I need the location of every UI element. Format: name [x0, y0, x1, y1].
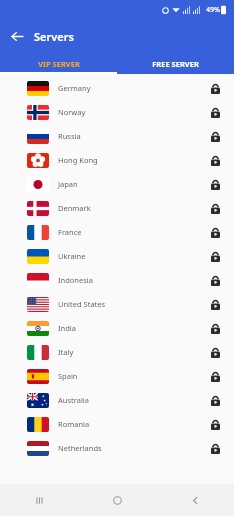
- staticText: Australia: [58, 395, 89, 405]
- button[interactable]: Locked Indonesia: [204, 269, 226, 291]
- button[interactable]: Locked Spain: [204, 365, 226, 387]
- staticText: Servers: [34, 29, 74, 44]
- staticText: France: [58, 227, 82, 237]
- button[interactable]: Germany: [0, 76, 234, 100]
- button[interactable]: VIP SERVER: [0, 53, 117, 74]
- button[interactable]: India: [0, 316, 234, 340]
- button[interactable]: France: [0, 220, 234, 244]
- button[interactable]: Locked Norway: [204, 101, 226, 123]
- staticText: VIP SERVER: [38, 59, 80, 69]
- button[interactable]: Locked United States: [204, 293, 226, 315]
- staticText: FREE SERVER: [152, 59, 199, 69]
- button[interactable]: Locked Italy: [204, 341, 226, 363]
- button[interactable]: Back: [0, 20, 34, 53]
- staticText: Japan: [58, 179, 78, 189]
- button[interactable]: FREE SERVER: [117, 53, 234, 74]
- staticText: Russia: [58, 131, 81, 141]
- staticText: Italy: [58, 347, 74, 357]
- staticText: Hong Kong: [58, 155, 98, 165]
- button[interactable]: Japan: [0, 172, 234, 196]
- staticText: Romania: [58, 419, 90, 429]
- button[interactable]: Locked Germany: [204, 77, 226, 99]
- button[interactable]: Denmark: [0, 196, 234, 220]
- button[interactable]: Australia: [0, 388, 234, 412]
- button[interactable]: Indonesia: [0, 268, 234, 292]
- staticText: Spain: [58, 371, 78, 381]
- staticText: Indonesia: [58, 275, 93, 285]
- button[interactable]: United States: [0, 292, 234, 316]
- staticText: India: [58, 323, 76, 333]
- staticText: Ukraine: [58, 251, 86, 261]
- button[interactable]: Romania: [0, 412, 234, 436]
- button[interactable]: Locked Romania: [204, 413, 226, 435]
- staticText: United States: [58, 299, 106, 309]
- button[interactable]: Home: [78, 484, 156, 516]
- staticText: Norway: [58, 107, 86, 117]
- staticText: Denmark: [58, 203, 91, 213]
- button[interactable]: Locked Australia: [204, 389, 226, 411]
- button[interactable]: Spain: [0, 364, 234, 388]
- button[interactable]: Recent apps: [0, 484, 78, 516]
- button[interactable]: Locked France: [204, 221, 226, 243]
- button[interactable]: Locked Japan: [204, 173, 226, 195]
- button[interactable]: Locked Ukraine: [204, 245, 226, 267]
- button[interactable]: Back: [156, 484, 234, 516]
- staticText: Netherlands: [58, 443, 102, 453]
- button[interactable]: Ukraine: [0, 244, 234, 268]
- button[interactable]: Locked Netherlands: [204, 437, 226, 459]
- button[interactable]: Locked Hong Kong: [204, 149, 226, 171]
- button[interactable]: Locked India: [204, 317, 226, 339]
- staticText: Germany: [58, 83, 91, 93]
- button[interactable]: Russia: [0, 124, 234, 148]
- button[interactable]: Hong Kong: [0, 148, 234, 172]
- button[interactable]: Locked Russia: [204, 125, 226, 147]
- button[interactable]: Italy: [0, 340, 234, 364]
- button[interactable]: Netherlands: [0, 436, 234, 460]
- staticText: 49%: [206, 5, 220, 15]
- button[interactable]: Norway: [0, 100, 234, 124]
- button[interactable]: Locked Denmark: [204, 197, 226, 219]
